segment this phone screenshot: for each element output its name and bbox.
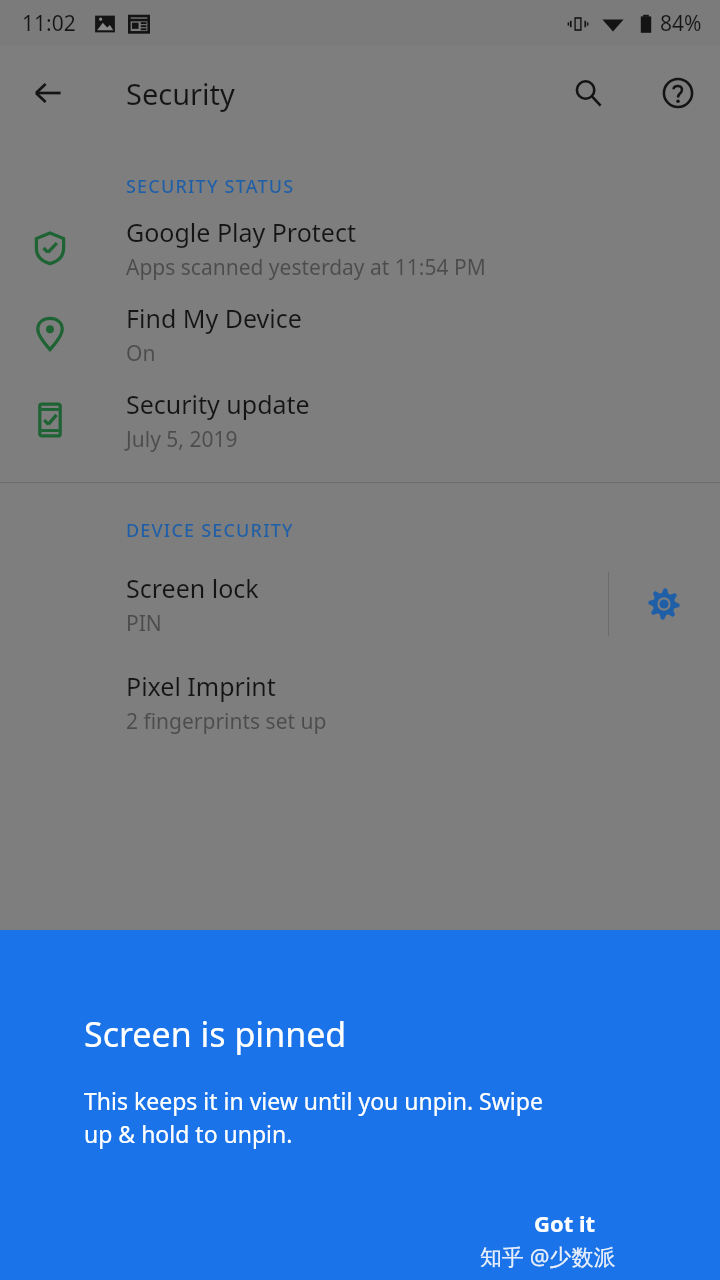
staticText: Screen lock [126, 571, 259, 605]
staticText: Apps scanned yesterday at 11:54 PM [126, 253, 486, 282]
staticText: Security update [126, 387, 310, 421]
staticText: July 5, 2019 [126, 425, 238, 454]
button[interactable]: Screen lock settings [636, 576, 692, 632]
button[interactable]: Screen lock [0, 549, 610, 659]
staticText: 11:02 [22, 9, 76, 38]
staticText: 84% [660, 9, 702, 38]
button[interactable]: Google Play Protect [0, 205, 720, 291]
staticText: Pixel Imprint [126, 669, 276, 703]
button[interactable]: Help [650, 65, 706, 121]
staticText: SECURITY STATUS [126, 174, 295, 199]
button[interactable]: Navigate up [20, 65, 76, 121]
staticText: 2 fingerprints set up [126, 707, 327, 736]
staticText: Find My Device [126, 301, 302, 335]
staticText: 知乎 @少数派 [480, 1241, 616, 1271]
staticText: On [126, 339, 156, 368]
staticText: Screen is pinned [84, 1011, 347, 1057]
button[interactable]: Security update [0, 377, 720, 463]
button[interactable]: Got it [516, 1198, 614, 1248]
staticText: PIN [126, 609, 162, 638]
button[interactable]: Find My Device [0, 291, 720, 377]
staticText: Google Play Protect [126, 215, 356, 249]
button[interactable]: Search [560, 65, 616, 121]
button[interactable]: Pixel Imprint [0, 659, 720, 745]
staticText: DEVICE SECURITY [126, 518, 294, 543]
staticText: This keeps it in view until you unpin. S… [84, 1085, 543, 1150]
staticText: Security [126, 74, 235, 113]
staticText: Got it [534, 1208, 596, 1238]
